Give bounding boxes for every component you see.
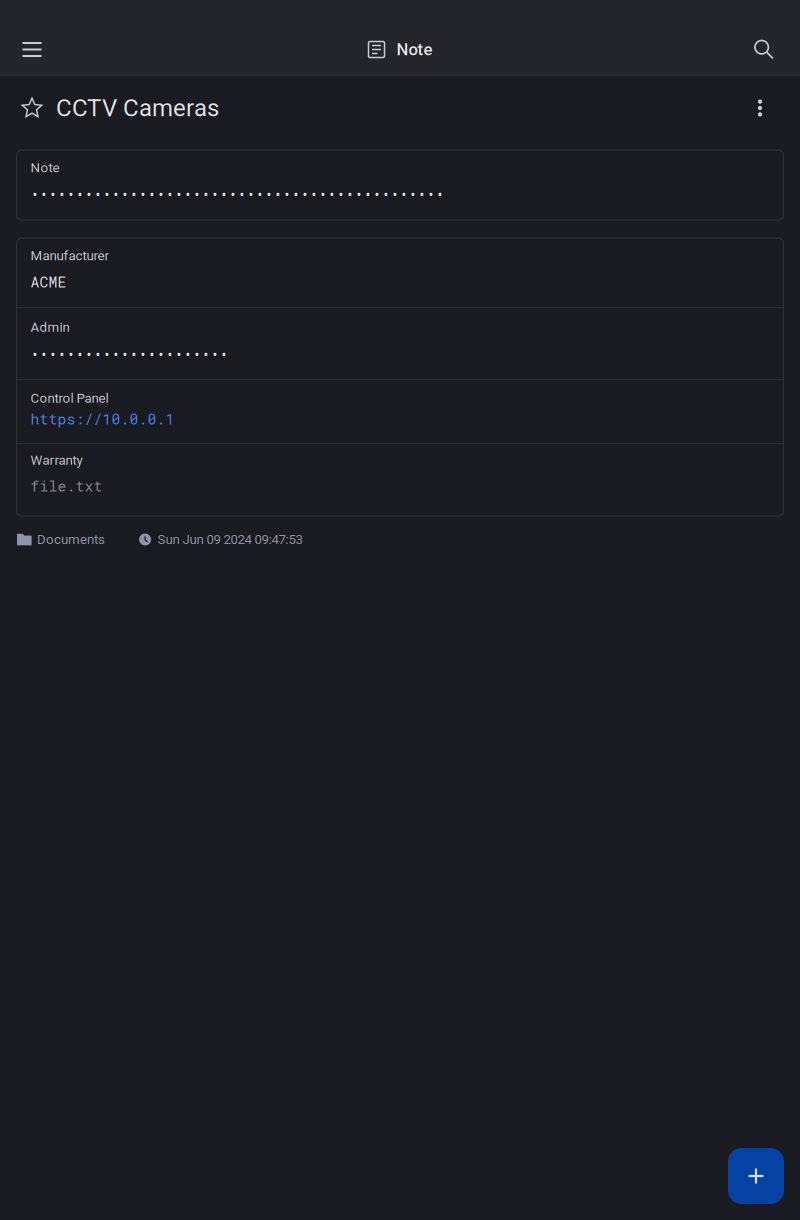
button[interactable]: Admin <box>16 308 783 379</box>
button[interactable]: Search <box>740 25 788 73</box>
button[interactable]: Documents <box>17 532 105 547</box>
button[interactable]: Menu <box>8 25 56 73</box>
staticText: CCTV Cameras <box>56 94 219 122</box>
staticText: file.txt <box>30 476 102 495</box>
staticText: Warranty <box>30 452 82 468</box>
button[interactable]: Favourite <box>14 90 50 126</box>
staticText: Documents <box>37 532 105 547</box>
staticText: Control Panel <box>30 390 108 406</box>
staticText: https://10.0.0.1 <box>30 409 174 428</box>
button[interactable]: Warranty <box>16 444 783 516</box>
staticText: Note <box>396 40 432 59</box>
button[interactable]: More options <box>742 90 778 126</box>
staticText: Sun Jun 09 2024 09:47:53 <box>158 532 303 547</box>
staticText: Note <box>30 160 59 176</box>
staticText: ••••••••••••••••••••••••••••••••••••••••… <box>30 185 444 204</box>
staticText: •••••••••••••••••••••• <box>30 345 228 364</box>
button[interactable]: Control Panel <box>16 380 783 443</box>
button[interactable]: Note <box>16 150 783 220</box>
staticText: Admin <box>30 319 69 335</box>
button[interactable]: Add <box>728 1148 784 1204</box>
staticText: ACME <box>30 272 66 291</box>
staticText: Manufacturer <box>30 248 109 264</box>
button[interactable]: Manufacturer <box>16 238 783 307</box>
